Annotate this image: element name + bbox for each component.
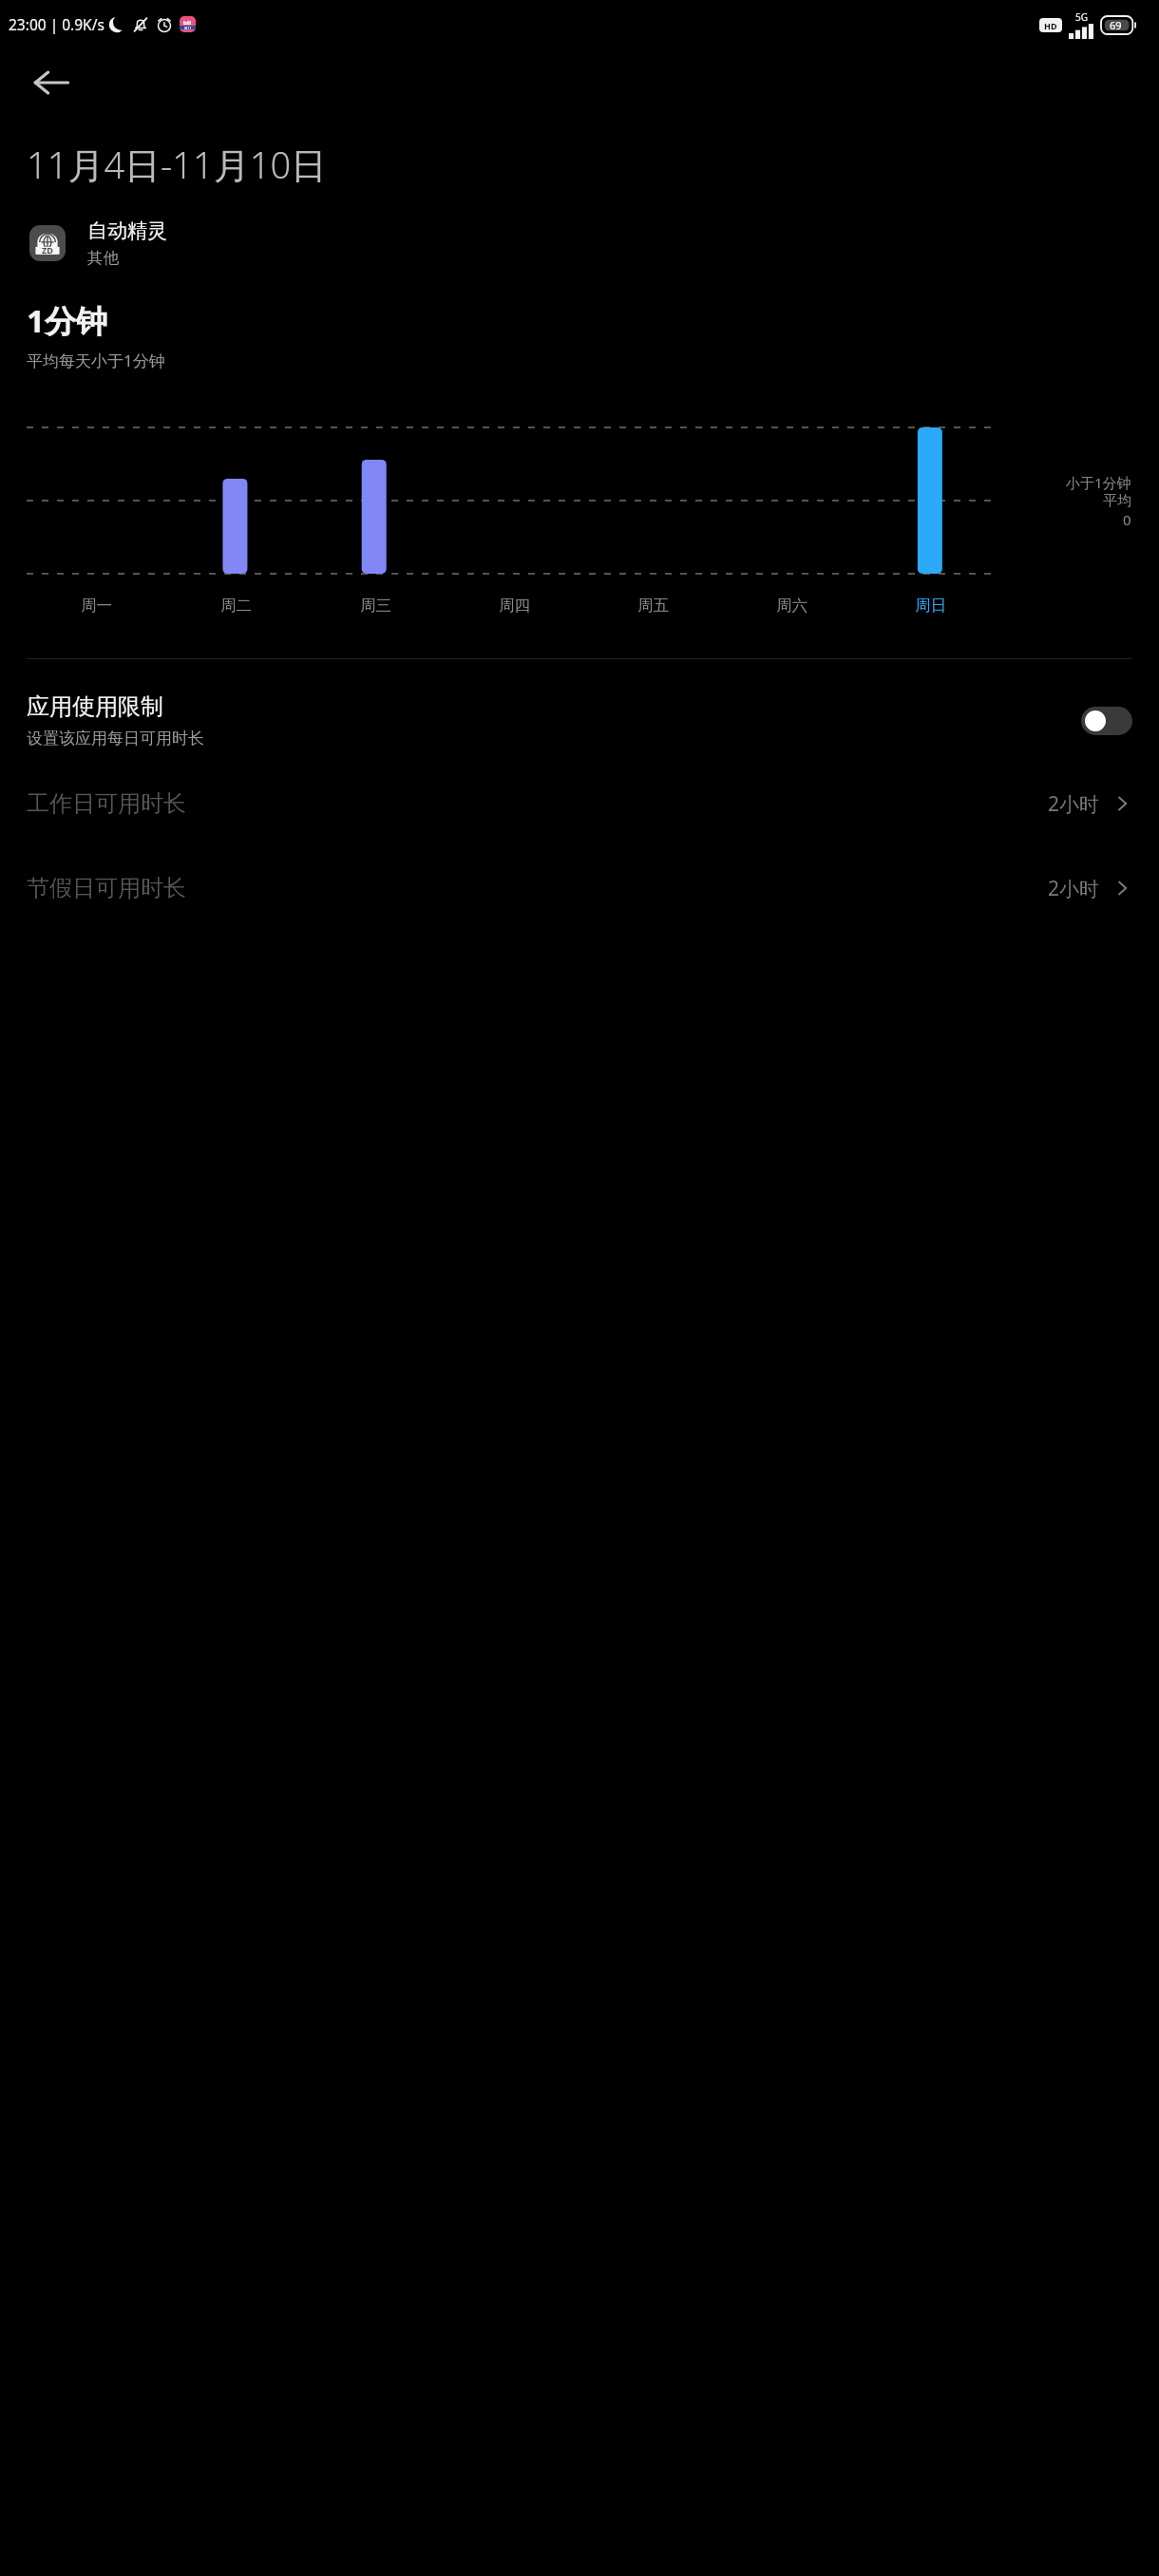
staticText: 周二 <box>220 596 252 616</box>
staticText: 周六 <box>776 596 807 616</box>
staticText: 自动精灵 <box>87 218 167 243</box>
staticText: 69 <box>1110 18 1122 32</box>
button[interactable]: 返回 <box>25 56 78 109</box>
staticText: 应用使用限制 <box>27 692 163 721</box>
staticText: 平均每天小于1分钟 <box>27 350 165 371</box>
staticText: 小于1分钟 <box>1066 473 1131 492</box>
button[interactable]: 工作日可用时长 <box>0 769 1159 838</box>
button[interactable]: ZD <box>29 218 1159 268</box>
staticText: 周日 <box>915 596 946 616</box>
button[interactable]: 节假日可用时长 <box>0 854 1159 922</box>
staticText: 平均 <box>1103 492 1131 510</box>
button[interactable]: 应用使用限制开关 <box>1081 707 1132 735</box>
staticText: 周四 <box>499 596 530 616</box>
staticText: 2小时 <box>1048 875 1100 902</box>
staticText: 周五 <box>637 596 669 616</box>
staticText: 5G <box>1075 10 1088 24</box>
staticText: 2小时 <box>1048 790 1100 818</box>
staticText: 0 <box>1123 510 1131 529</box>
staticText: 工作日可用时长 <box>27 789 1048 818</box>
staticText: 周三 <box>360 596 391 616</box>
staticText: HD <box>1044 20 1057 31</box>
staticText: 1分钟 <box>27 299 107 342</box>
staticText: 节假日可用时长 <box>27 874 1048 902</box>
staticText: bili <box>183 19 192 26</box>
button[interactable]: 应用使用限制 <box>0 692 1159 748</box>
staticText: 其他 <box>87 248 119 268</box>
staticText: 11月4日-11月10日 <box>27 140 328 189</box>
staticText: 周一 <box>81 596 112 616</box>
staticText: 23:00 | 0.9K/s <box>9 14 104 34</box>
staticText: ZD <box>42 244 53 256</box>
staticText: 双11 <box>184 26 192 29</box>
staticText: 设置该应用每日可用时长 <box>27 729 204 748</box>
